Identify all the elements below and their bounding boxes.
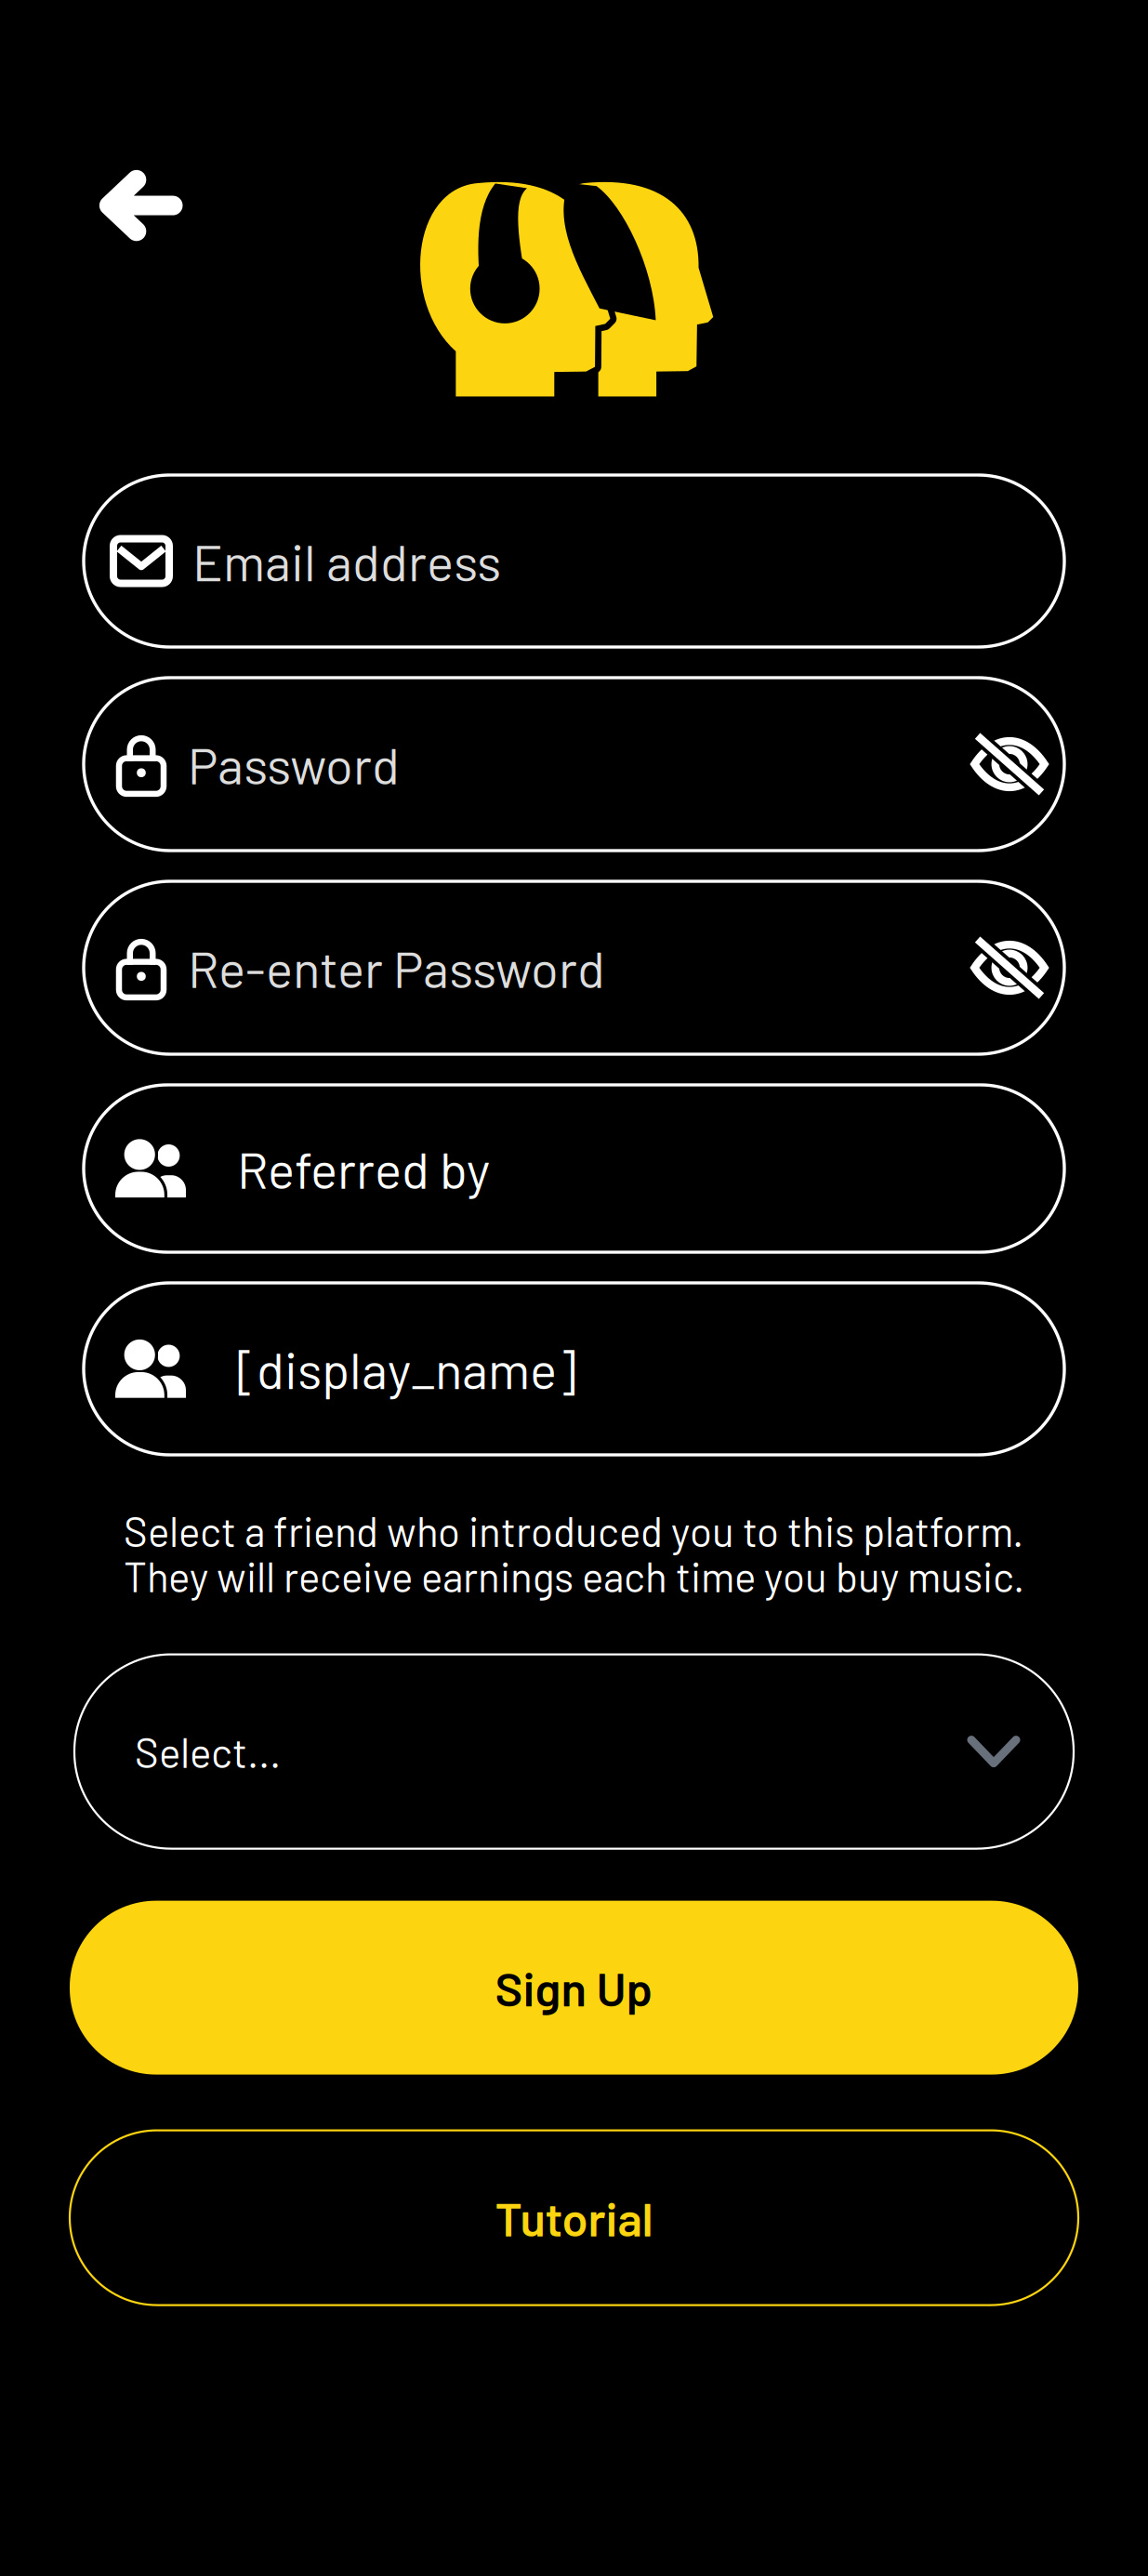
staticText: Re-enter Password — [188, 937, 605, 998]
staticText: Tutorial — [495, 2189, 653, 2246]
button[interactable]: Show password — [959, 732, 1060, 796]
staticText: Email address — [192, 531, 501, 592]
button[interactable]: Back — [78, 139, 203, 272]
button[interactable]: Show re-entered password — [959, 936, 1060, 1000]
staticText: Select a friend who introduced you to th… — [124, 1506, 1023, 1555]
staticText: Sign Up — [495, 1959, 653, 2016]
staticText: Select... — [135, 1727, 281, 1776]
staticText: Password — [188, 734, 400, 795]
button[interactable]: Referred by — [84, 1085, 1064, 1252]
staticText: [display_name] — [237, 1338, 576, 1399]
staticText: They will receive earnings each time you… — [124, 1551, 1024, 1600]
button[interactable]: Tutorial — [70, 2130, 1078, 2305]
button[interactable]: Sign Up — [70, 1901, 1078, 2075]
button[interactable]: Select... — [74, 1654, 1074, 1849]
button[interactable]: [display_name] — [84, 1283, 1064, 1455]
staticText: Referred by — [237, 1138, 490, 1199]
